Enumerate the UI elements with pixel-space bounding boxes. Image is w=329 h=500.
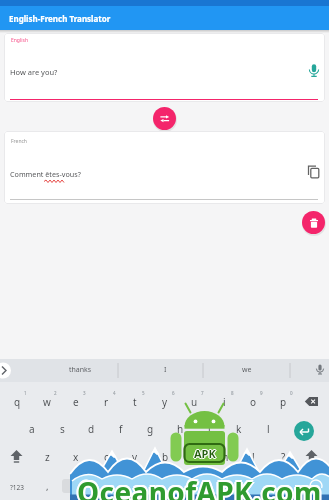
button[interactable]	[3, 384, 31, 412]
button[interactable]	[306, 63, 322, 80]
button[interactable]	[0, 361, 14, 382]
staticText: English	[11, 37, 29, 44]
button[interactable]	[62, 479, 267, 493]
button[interactable]	[302, 211, 325, 234]
button[interactable]	[153, 107, 176, 130]
button[interactable]	[2, 471, 30, 499]
staticText: f	[119, 422, 123, 436]
button[interactable]	[62, 442, 90, 470]
staticText: h	[177, 422, 184, 436]
button[interactable]	[269, 442, 297, 470]
button[interactable]: English-French Translator	[0, 6, 329, 30]
staticText: 4	[113, 390, 116, 396]
staticText: y	[162, 395, 168, 409]
staticText: French	[11, 138, 27, 145]
staticText: r	[104, 395, 109, 409]
staticText: OceanofAPK.com	[76, 474, 321, 500]
staticText: English-French Translator	[9, 13, 111, 24]
staticText: k	[236, 422, 242, 436]
staticText: g	[147, 422, 154, 436]
button[interactable]	[136, 413, 164, 441]
staticText: p	[280, 395, 287, 409]
staticText: ?123	[10, 483, 24, 492]
staticText: OceanofAPK.com	[78, 474, 323, 500]
button[interactable]	[269, 384, 297, 412]
button[interactable]	[135, 361, 195, 382]
button[interactable]	[225, 413, 253, 441]
staticText: How are you?	[10, 67, 58, 77]
staticText: x	[73, 450, 79, 464]
button[interactable]	[305, 164, 323, 182]
staticText: u	[191, 395, 198, 409]
staticText: ?	[281, 450, 286, 464]
staticText: 3	[83, 390, 86, 396]
staticText: b	[162, 450, 169, 464]
button[interactable]	[18, 413, 46, 441]
staticText: !	[252, 450, 255, 464]
button[interactable]	[210, 384, 238, 412]
staticText: n	[191, 450, 198, 464]
button[interactable]	[151, 442, 179, 470]
staticText: a	[29, 422, 35, 436]
button[interactable]	[180, 442, 208, 470]
staticText: OceanofAPK.com	[77, 473, 322, 500]
button[interactable]	[9, 449, 24, 463]
staticText: APK	[194, 447, 216, 462]
staticText: OceanofAPK.com	[79, 473, 324, 500]
staticText: Comment êtes-vous?	[10, 169, 81, 179]
button[interactable]	[304, 449, 319, 463]
button[interactable]	[33, 384, 61, 412]
button[interactable]	[62, 384, 90, 412]
staticText: w	[43, 395, 51, 409]
staticText: OceanofAPK.com	[75, 473, 320, 500]
staticText: o	[250, 395, 257, 409]
staticText: 0	[290, 390, 293, 396]
staticText: APK	[194, 445, 216, 460]
staticText: m	[219, 450, 229, 464]
button[interactable]	[210, 442, 238, 470]
button[interactable]	[217, 361, 277, 382]
staticText: OceanofAPK.com	[76, 471, 321, 500]
staticText: OceanofAPK.com	[78, 471, 323, 500]
button[interactable]	[121, 442, 149, 470]
button[interactable]: English	[4, 33, 325, 102]
button[interactable]: French	[4, 131, 325, 204]
button[interactable]	[310, 361, 329, 382]
button[interactable]	[254, 413, 282, 441]
button[interactable]	[92, 384, 120, 412]
staticText: APK	[195, 446, 217, 461]
button[interactable]	[239, 384, 267, 412]
button[interactable]	[239, 442, 267, 470]
staticText: ,	[46, 480, 49, 493]
staticText: 7	[201, 390, 204, 396]
staticText: q	[14, 395, 21, 409]
button[interactable]	[304, 396, 319, 407]
button[interactable]	[151, 384, 179, 412]
button[interactable]	[107, 413, 135, 441]
staticText: APK	[193, 446, 215, 461]
staticText: 8	[231, 390, 234, 396]
button[interactable]	[77, 413, 105, 441]
button[interactable]	[92, 442, 120, 470]
button[interactable]	[180, 384, 208, 412]
staticText: v	[132, 450, 138, 464]
button[interactable]	[166, 413, 194, 441]
staticText: 5	[142, 390, 145, 396]
button[interactable]	[60, 361, 180, 382]
staticText: l	[267, 422, 270, 436]
staticText: OceanofAPK.com	[77, 475, 322, 500]
staticText: we	[242, 365, 252, 375]
staticText: 9	[260, 390, 263, 396]
button[interactable]	[195, 413, 223, 441]
staticText: c	[104, 450, 109, 464]
staticText: j	[208, 422, 211, 436]
staticText: thanks	[69, 365, 92, 375]
staticText: s	[60, 422, 65, 436]
button[interactable]	[121, 384, 149, 412]
button[interactable]	[33, 442, 61, 470]
button[interactable]	[294, 421, 314, 441]
staticText: 1	[24, 390, 27, 396]
staticText: z	[45, 450, 50, 464]
staticText: I	[164, 365, 167, 375]
button[interactable]	[48, 413, 76, 441]
